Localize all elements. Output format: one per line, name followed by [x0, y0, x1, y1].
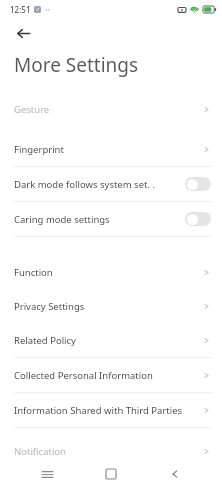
staticText: Caring mode settings — [14, 213, 179, 226]
button[interactable]: Related Policy — [0, 323, 222, 357]
button[interactable]: Toggle — [185, 212, 211, 226]
button[interactable]: Collected Personal Information — [0, 358, 222, 392]
button[interactable]: Back — [8, 18, 38, 48]
staticText: Gesture — [14, 103, 202, 116]
staticText: Information Shared with Third Parties — [14, 404, 202, 417]
button[interactable]: Notification — [0, 434, 222, 468]
button[interactable]: Toggle — [185, 177, 211, 191]
staticText: Related Policy — [14, 334, 202, 347]
button[interactable]: Dark mode follows system set. . — [0, 167, 222, 201]
button[interactable]: Home — [94, 468, 128, 480]
staticText: Collected Personal Information — [14, 369, 202, 382]
button[interactable]: Gesture — [0, 92, 222, 126]
button[interactable]: Information Shared with Third Parties — [0, 393, 222, 427]
button[interactable]: Privacy Settings — [0, 289, 222, 323]
staticText: Fingerprint — [14, 143, 202, 156]
button[interactable]: Caring mode settings — [0, 202, 222, 236]
staticText: Privacy Settings — [14, 300, 202, 313]
staticText: 12:51 — [10, 4, 31, 15]
staticText: Dark mode follows system set. . — [14, 178, 179, 191]
staticText: Notification — [14, 445, 202, 458]
staticText: Function — [14, 266, 202, 279]
staticText: More Settings — [14, 52, 139, 78]
button[interactable]: Back — [158, 468, 192, 480]
button[interactable]: Function — [0, 255, 222, 289]
button[interactable]: Recents — [30, 468, 64, 480]
button[interactable]: Fingerprint — [0, 132, 222, 166]
